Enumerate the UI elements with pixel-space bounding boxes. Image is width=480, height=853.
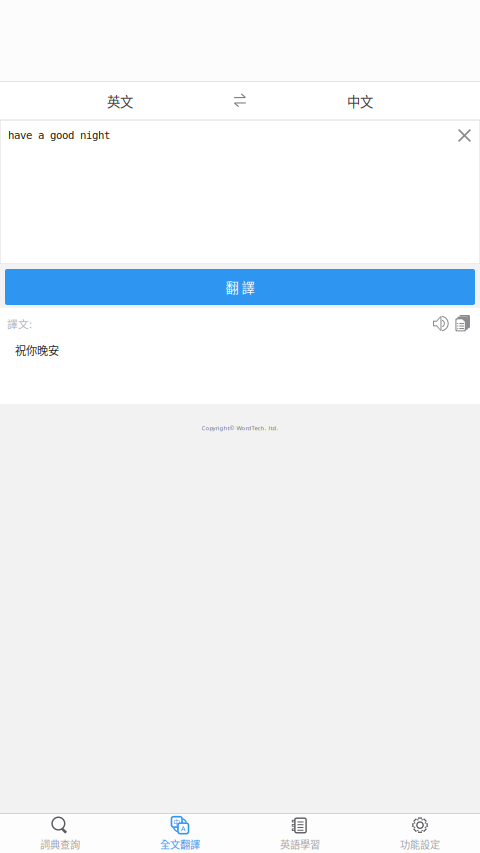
button[interactable]: Clear text [450, 129, 471, 142]
button[interactable]: 英語學習 [240, 812, 360, 853]
staticText: A [181, 823, 186, 833]
button[interactable]: Copy translation [452, 315, 474, 332]
button[interactable]: Speak translation [430, 315, 452, 331]
staticText: Copyright© WordTech. ltd. [201, 424, 278, 432]
staticText: 中文 [347, 91, 373, 111]
button[interactable]: 翻 譯 [5, 269, 475, 305]
staticText: 翻 譯 [225, 277, 254, 297]
staticText: have a good night [8, 129, 110, 141]
staticText: 英文 [107, 91, 133, 111]
staticText: 詞典查詢 [40, 837, 80, 851]
staticText: 譯文: [7, 316, 32, 331]
button[interactable]: 英文 [0, 82, 240, 120]
button[interactable]: 中文 [240, 82, 480, 120]
button[interactable]: 詞典查詢 [0, 812, 120, 853]
staticText: 中 [173, 817, 180, 827]
staticText: 英語學習 [280, 837, 320, 851]
button[interactable]: 中 [120, 812, 240, 853]
staticText: 功能設定 [400, 837, 440, 851]
staticText: 全文翻譯 [160, 837, 200, 851]
button[interactable]: 功能設定 [360, 812, 480, 853]
staticText: 祝你晚安 [15, 342, 59, 358]
button[interactable]: Swap languages [218, 82, 262, 120]
